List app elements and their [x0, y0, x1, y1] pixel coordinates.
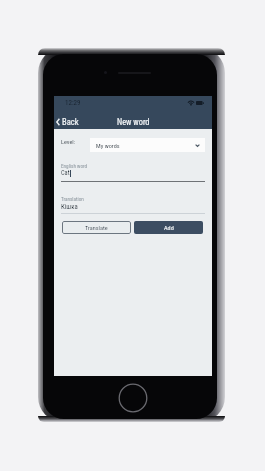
staticText: Кішка [61, 203, 78, 211]
other: Battery [196, 101, 204, 105]
button[interactable]: Add [134, 221, 203, 234]
staticText: Back [62, 117, 79, 127]
button[interactable]: My words [90, 138, 205, 152]
staticText: English word [61, 163, 88, 169]
staticText: Cat [61, 169, 70, 177]
button[interactable]: Back [54, 113, 85, 131]
staticText: Add [164, 224, 174, 231]
staticText: My words [96, 142, 120, 149]
staticText: Translation [61, 196, 84, 202]
staticText: Translate [85, 224, 108, 231]
button[interactable]: Translate [62, 221, 131, 234]
staticText: Level: [61, 138, 76, 145]
staticText: 12:29 [65, 99, 81, 107]
other: Wi-Fi [188, 101, 194, 105]
button[interactable]: Home [118, 383, 148, 413]
staticText: New word [117, 117, 150, 127]
